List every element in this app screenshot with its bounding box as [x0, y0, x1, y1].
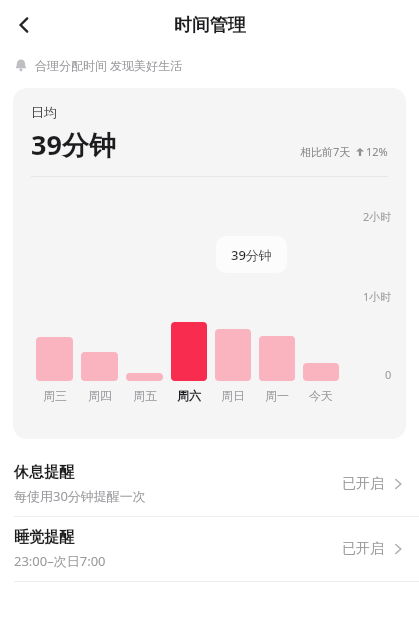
- staticText: 12%: [366, 144, 388, 159]
- staticText: 休息提醒: [14, 463, 74, 482]
- staticText: 合理分配时间 发现美好生活: [35, 57, 183, 73]
- staticText: 周四: [88, 388, 112, 403]
- staticText: 1小时: [363, 289, 392, 304]
- staticText: 周三: [43, 388, 67, 403]
- button[interactable]: 休息提醒: [0, 452, 419, 516]
- staticText: 相比前7天: [300, 144, 351, 159]
- staticText: 39分钟: [31, 126, 116, 163]
- staticText: 已开启: [342, 540, 384, 558]
- staticText: 每使用30分钟提醒一次: [14, 487, 146, 505]
- button[interactable]: 今天: [299, 363, 343, 403]
- staticText: 周六: [177, 388, 201, 403]
- staticText: 0: [385, 367, 392, 382]
- staticText: 周日: [221, 388, 245, 403]
- button[interactable]: 周三: [32, 337, 77, 403]
- button[interactable]: 周日: [211, 329, 255, 403]
- staticText: 睡觉提醒: [14, 528, 74, 547]
- button[interactable]: 周六: [167, 322, 211, 403]
- staticText: 周五: [133, 388, 157, 403]
- staticText: 今天: [309, 388, 333, 403]
- staticText: 23:00–次日7:00: [14, 552, 106, 570]
- button[interactable]: 睡觉提醒: [0, 517, 419, 581]
- staticText: 39分钟: [231, 246, 272, 264]
- staticText: 日均: [31, 104, 57, 120]
- staticText: 周一: [265, 388, 289, 403]
- button[interactable]: 周五: [122, 373, 167, 403]
- staticText: 已开启: [342, 475, 384, 493]
- button[interactable]: 周一: [255, 336, 299, 403]
- button[interactable]: 周四: [77, 352, 122, 403]
- button[interactable]: Back: [4, 5, 44, 45]
- staticText: 时间管理: [174, 14, 246, 37]
- staticText: 2小时: [363, 209, 392, 224]
